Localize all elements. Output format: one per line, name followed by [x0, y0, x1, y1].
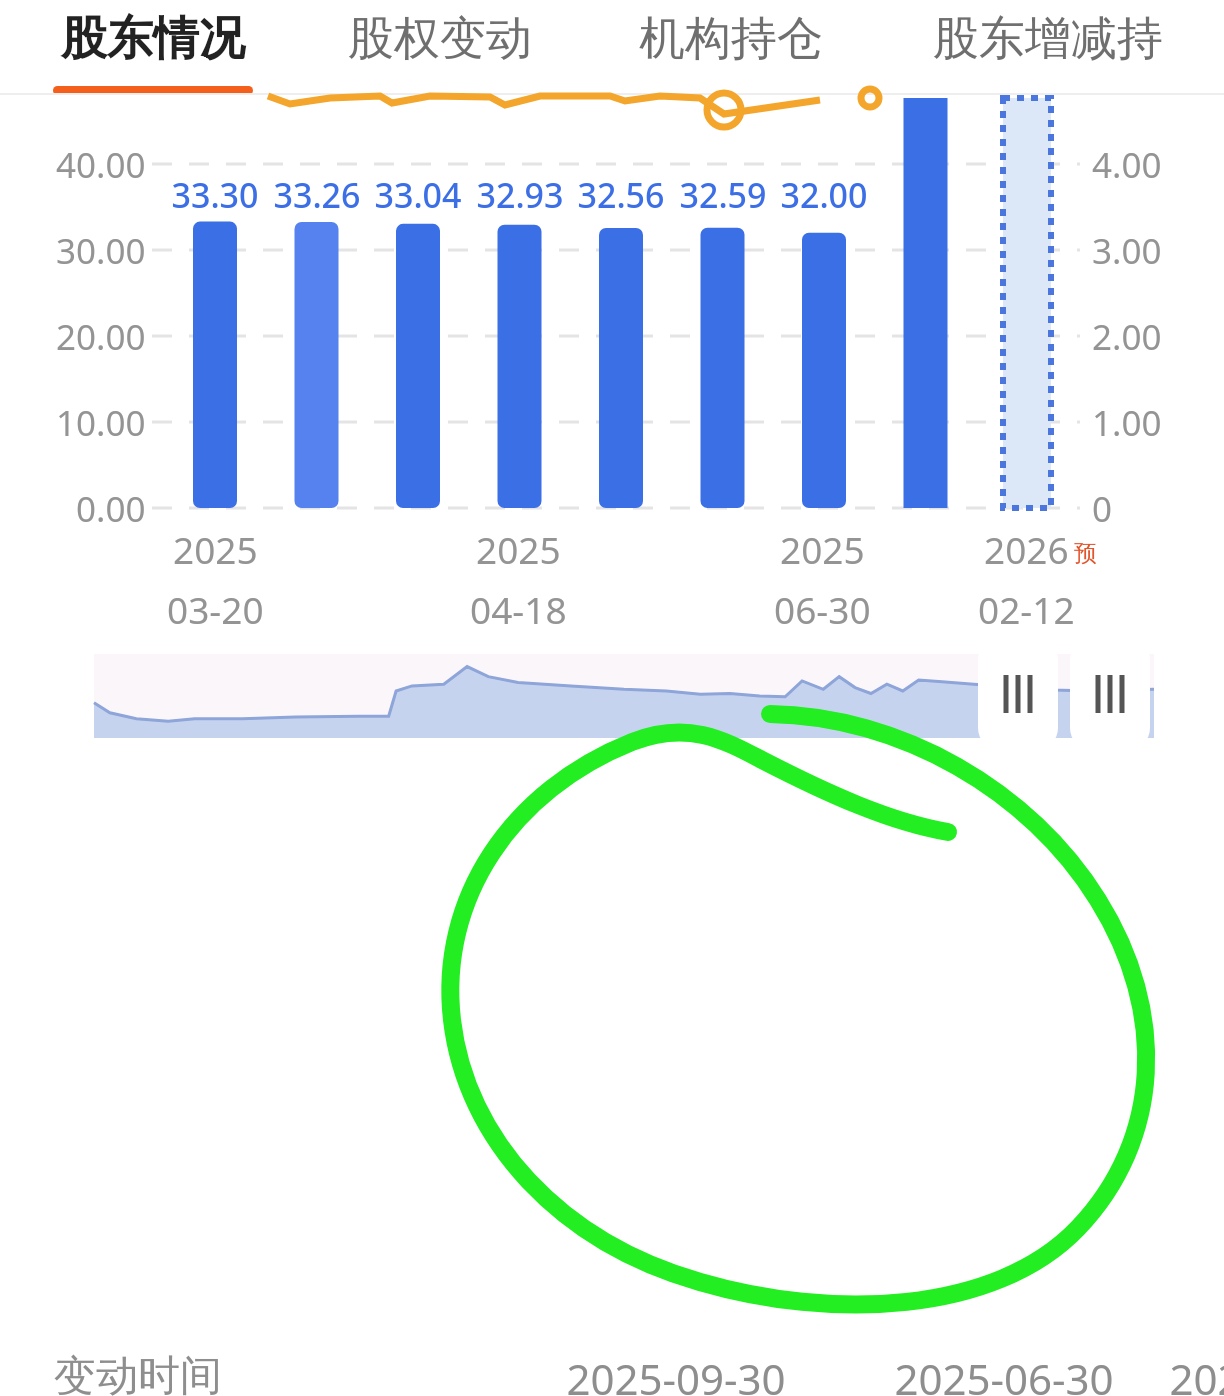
staticText: 32.59 [679, 172, 767, 218]
staticText: 02-12 [978, 584, 1075, 634]
button[interactable]: 股权变动 [340, 0, 540, 96]
staticText: 03-20 [167, 584, 264, 634]
staticText: 2025-06-30 [894, 1350, 1114, 1396]
staticText: 33.26 [273, 172, 361, 218]
staticText: 2.00 [1092, 313, 1162, 361]
staticText: 2026 [984, 524, 1069, 574]
staticText: 变动时间 [54, 1350, 222, 1396]
staticText: 40.00 [56, 141, 146, 189]
button[interactable]: Right range handle [1070, 638, 1150, 750]
button[interactable]: 股东增减持 [923, 0, 1173, 96]
button[interactable]: Left range handle [978, 638, 1058, 750]
staticText: 32.93 [476, 172, 564, 218]
staticText: 0 [1092, 485, 1113, 533]
button[interactable]: 股东情况 [53, 0, 253, 96]
staticText: 股东情况 [61, 10, 245, 68]
staticText: 33.04 [374, 172, 462, 218]
staticText: 预 [1074, 539, 1097, 568]
staticText: 06-30 [774, 584, 871, 634]
staticText: 33.30 [171, 172, 259, 218]
staticText: 2025-09-30 [566, 1350, 786, 1396]
staticText: 股东增减持 [933, 10, 1163, 68]
staticText: 股权变动 [348, 10, 532, 68]
staticText: 10.00 [56, 399, 146, 447]
staticText: 1.00 [1092, 399, 1162, 447]
staticText: 4.00 [1092, 141, 1162, 189]
staticText: 机构持仓 [639, 10, 823, 68]
staticText: 2025 [476, 524, 561, 574]
button[interactable]: 变动时间 [0, 1340, 1224, 1396]
button[interactable]: 机构持仓 [631, 0, 831, 96]
staticText: 0.00 [76, 485, 146, 533]
staticText: 20.00 [56, 313, 146, 361]
staticText: 30.00 [56, 227, 146, 275]
staticText: 04-18 [470, 584, 567, 634]
staticText: 2025 [780, 524, 865, 574]
button[interactable] [94, 654, 1154, 738]
staticText: 3.00 [1092, 227, 1162, 275]
staticText: 202 [1169, 1350, 1224, 1396]
staticText: 32.56 [577, 172, 665, 218]
staticText: 32.00 [780, 172, 868, 218]
staticText: 2025 [173, 524, 258, 574]
